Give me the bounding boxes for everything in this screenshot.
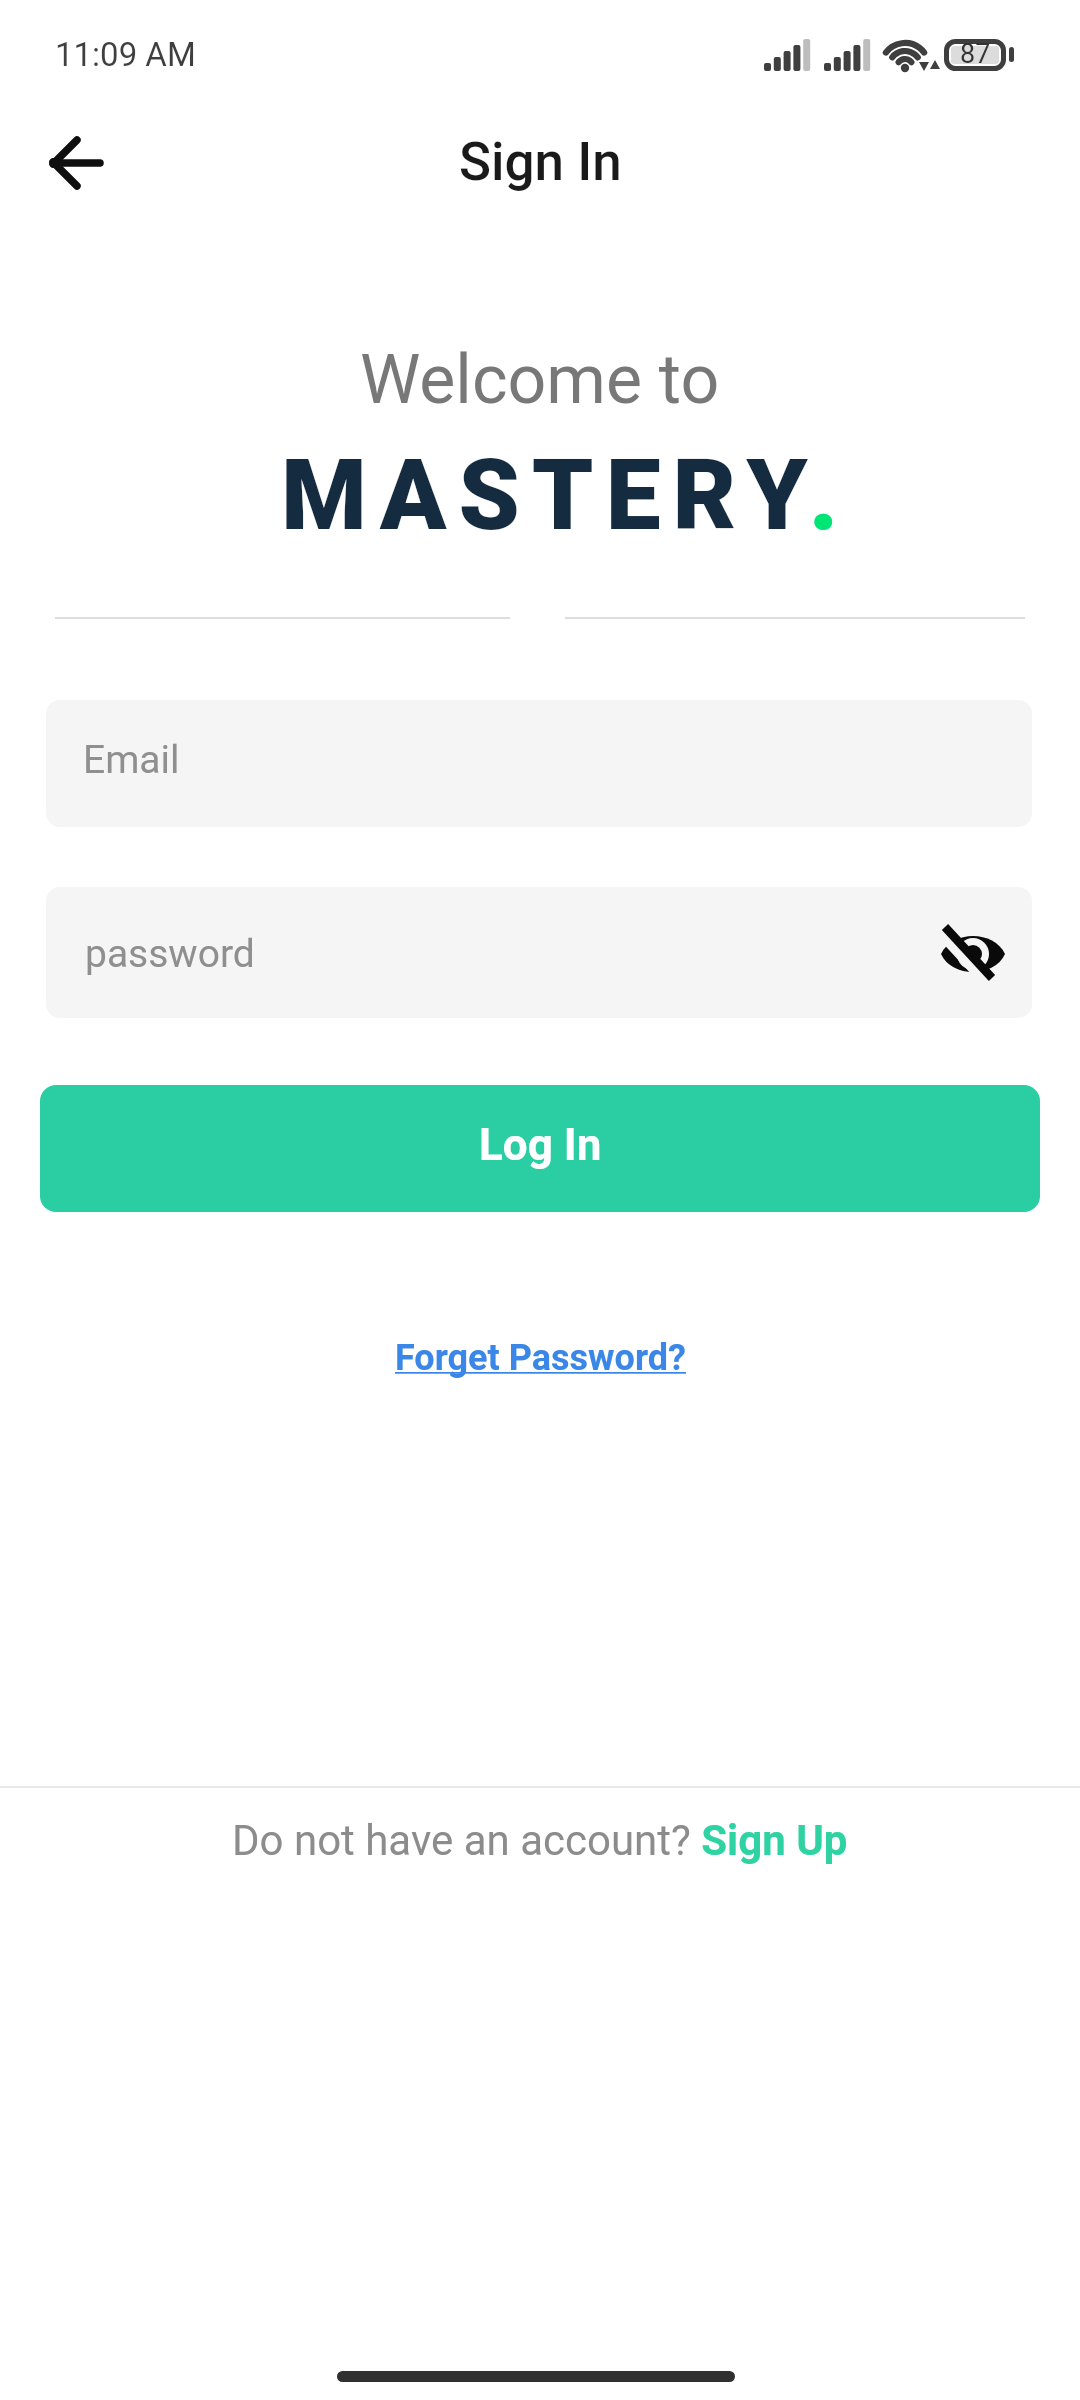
staticText: password [85,931,255,977]
staticText: MASTERY. [281,438,851,553]
button[interactable] [46,700,1032,827]
button[interactable] [46,887,1032,1018]
staticText: Welcome to [360,340,720,420]
button[interactable]: Log In [40,1085,1040,1212]
staticText: Email [83,737,180,783]
staticText: Do not have an account? Sign Up [232,1816,848,1865]
staticText: 87 [960,38,991,70]
staticText: Sign In [459,131,622,193]
staticText: Log In [479,1119,602,1171]
button[interactable] [938,918,1008,988]
staticText: 11:09 AM [55,35,196,74]
button[interactable]: Forget Password? [395,1337,686,1379]
button[interactable]: Do not have an account? Sign Up [0,1816,1080,1865]
button[interactable] [35,124,115,204]
